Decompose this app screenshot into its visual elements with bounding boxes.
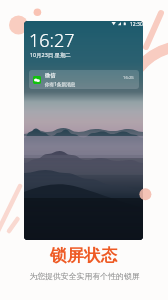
staticText: 12:30 [130, 21, 143, 28]
staticText: 微信 [45, 72, 56, 79]
staticText: 你有1条新消息 [45, 81, 76, 87]
staticText: 10月23日 星期二 [30, 51, 71, 58]
button[interactable]: 微信 [29, 70, 139, 89]
staticText: 锁屏状态 [50, 245, 118, 266]
staticText: 为您提供安全实用有个性的锁屏 [29, 271, 140, 281]
staticText: 16:25 [123, 75, 134, 81]
staticText: 16:27 [29, 28, 75, 53]
